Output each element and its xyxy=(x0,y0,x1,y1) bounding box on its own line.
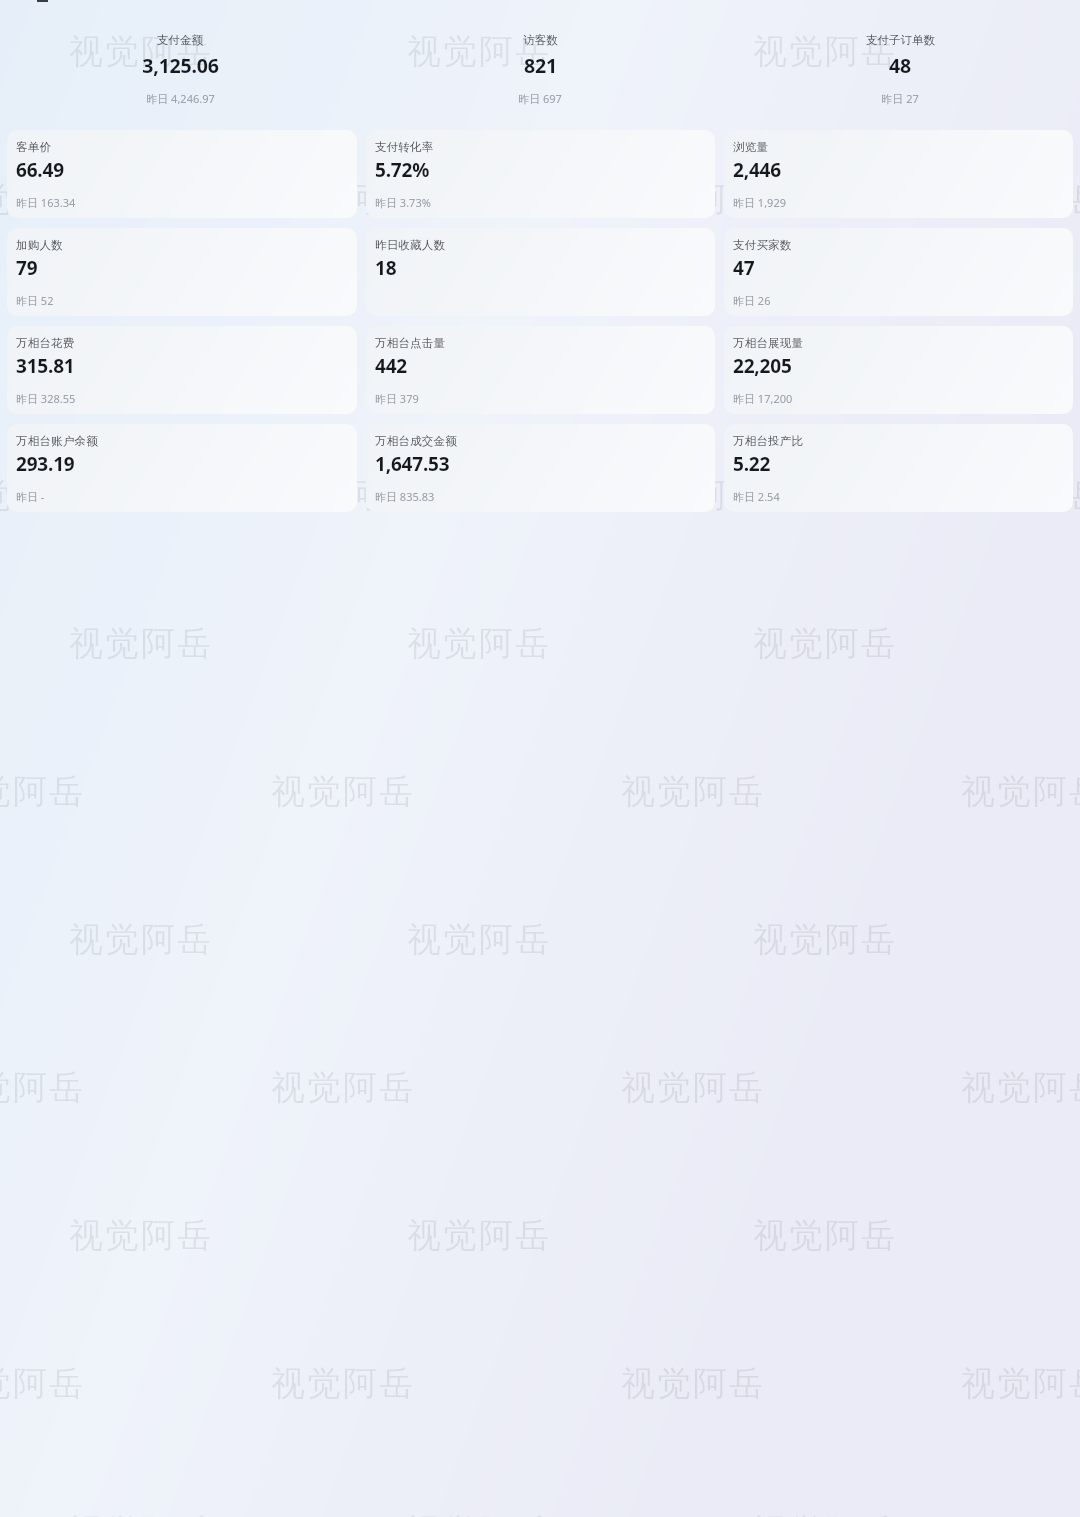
staticText: 视觉阿岳 xyxy=(406,918,550,961)
staticText: 视觉阿岳 xyxy=(620,474,764,517)
staticText: 22,205 xyxy=(733,353,792,379)
staticText: 视觉阿岳 xyxy=(960,1362,1080,1405)
staticText: 万相台点击量 xyxy=(375,336,446,350)
staticText: 821 xyxy=(524,52,557,79)
staticText: 47 xyxy=(733,255,755,281)
staticText: 66.49 xyxy=(16,157,64,183)
staticText: 视觉阿岳 xyxy=(620,178,764,221)
staticText: 昨日 3.73% xyxy=(375,195,431,210)
staticText: 昨日 - xyxy=(16,489,45,504)
button[interactable]: 支付子订单数 xyxy=(720,33,1080,106)
staticText: 视觉阿岳 xyxy=(752,1214,896,1257)
staticText: 视觉阿岳 xyxy=(960,770,1080,813)
staticText: 293.19 xyxy=(16,451,75,477)
staticText: 视觉阿岳 xyxy=(752,326,896,369)
staticText: 视觉阿岳 xyxy=(752,918,896,961)
staticText: 442 xyxy=(375,353,408,379)
staticText: 昨日 163.34 xyxy=(16,195,76,210)
staticText: 视觉阿岳 xyxy=(270,474,414,517)
staticText: 2,446 xyxy=(733,157,781,183)
staticText: 视觉阿岳 xyxy=(68,30,212,73)
staticText: 万相台账户余额 xyxy=(16,434,98,448)
staticText: 视觉阿岳 xyxy=(270,1066,414,1109)
staticText: 支付金额 xyxy=(157,33,203,47)
staticText: 视觉阿岳 xyxy=(68,918,212,961)
staticText: 昨日 328.55 xyxy=(16,391,76,406)
staticText: 昨日 52 xyxy=(16,293,54,308)
staticText: 视觉阿岳 xyxy=(68,1214,212,1257)
button[interactable]: 浏览量 xyxy=(724,130,1073,218)
staticText: 视觉阿岳 xyxy=(68,622,212,665)
button[interactable]: 万相台成交金额 xyxy=(366,424,715,512)
staticText: 客单价 xyxy=(16,140,52,154)
staticText: 昨日 17,200 xyxy=(733,391,793,406)
staticText: 315.81 xyxy=(16,353,75,379)
staticText: 视觉阿岳 xyxy=(960,474,1080,517)
button[interactable]: 万相台花费 xyxy=(7,326,357,414)
button[interactable]: 万相台点击量 xyxy=(366,326,715,414)
staticText: 昨日 1,929 xyxy=(733,195,786,210)
staticText: 1,647.53 xyxy=(375,451,450,477)
staticText: 浏览量 xyxy=(733,140,769,154)
staticText: 万相台投产比 xyxy=(733,434,804,448)
staticText: 视觉阿岳 xyxy=(0,770,84,813)
staticText: 支付转化率 xyxy=(375,140,434,154)
button[interactable]: 加购人数 xyxy=(7,228,357,316)
staticText: 视觉阿岳 xyxy=(752,622,896,665)
button[interactable]: 支付买家数 xyxy=(724,228,1073,316)
staticText: 视觉阿岳 xyxy=(270,770,414,813)
staticText: 视觉阿岳 xyxy=(960,178,1080,221)
staticText: 加购人数 xyxy=(16,238,63,252)
staticText: 视觉阿岳 xyxy=(620,1066,764,1109)
staticText: 视觉阿岳 xyxy=(270,178,414,221)
button[interactable]: 昨日收藏人数 xyxy=(366,228,715,316)
staticText: 支付买家数 xyxy=(733,238,792,252)
staticText: 支付子订单数 xyxy=(866,33,935,47)
staticText: 视觉阿岳 xyxy=(68,326,212,369)
staticText: 18 xyxy=(375,255,397,281)
staticText: 视觉阿岳 xyxy=(0,1066,84,1109)
button[interactable]: 万相台展现量 xyxy=(724,326,1073,414)
button[interactable]: 支付转化率 xyxy=(366,130,715,218)
staticText: 昨日 27 xyxy=(881,91,919,106)
staticText: 视觉阿岳 xyxy=(620,1362,764,1405)
staticText: 昨日收藏人数 xyxy=(375,238,446,252)
staticText: 昨日 697 xyxy=(518,91,562,106)
button[interactable]: 访客数 xyxy=(360,33,720,106)
staticText: 昨日 835.83 xyxy=(375,489,435,504)
button[interactable]: 万相台投产比 xyxy=(724,424,1073,512)
button[interactable]: 客单价 xyxy=(7,130,357,218)
staticText: 视觉阿岳 xyxy=(270,1362,414,1405)
staticText: 万相台成交金额 xyxy=(375,434,457,448)
staticText: 万相台展现量 xyxy=(733,336,804,350)
staticText: 视觉阿岳 xyxy=(0,1362,84,1405)
staticText: 视觉阿岳 xyxy=(406,1214,550,1257)
staticText: 视觉阿岳 xyxy=(406,30,550,73)
staticText: 视觉阿岳 xyxy=(752,30,896,73)
staticText: 视觉阿岳 xyxy=(406,326,550,369)
staticText: 79 xyxy=(16,255,38,281)
staticText: 视觉阿岳 xyxy=(406,622,550,665)
staticText: 万相台花费 xyxy=(16,336,75,350)
staticText: 视觉阿岳 xyxy=(0,474,84,517)
staticText: 视觉阿岳 xyxy=(620,770,764,813)
button[interactable]: 支付金额 xyxy=(0,33,360,106)
staticText: 昨日 379 xyxy=(375,391,419,406)
staticText: 5.22 xyxy=(733,451,771,477)
staticText: 视觉阿岳 xyxy=(960,1066,1080,1109)
staticText: 访客数 xyxy=(523,33,558,47)
button[interactable]: 万相台账户余额 xyxy=(7,424,357,512)
staticText: 昨日 4,246.97 xyxy=(146,91,215,106)
staticText: 3,125.06 xyxy=(142,52,219,79)
staticText: 视觉阿岳 xyxy=(0,178,84,221)
staticText: 5.72% xyxy=(375,157,430,183)
staticText: 48 xyxy=(889,52,911,79)
staticText: 昨日 2.54 xyxy=(733,489,780,504)
staticText: 昨日 26 xyxy=(733,293,771,308)
